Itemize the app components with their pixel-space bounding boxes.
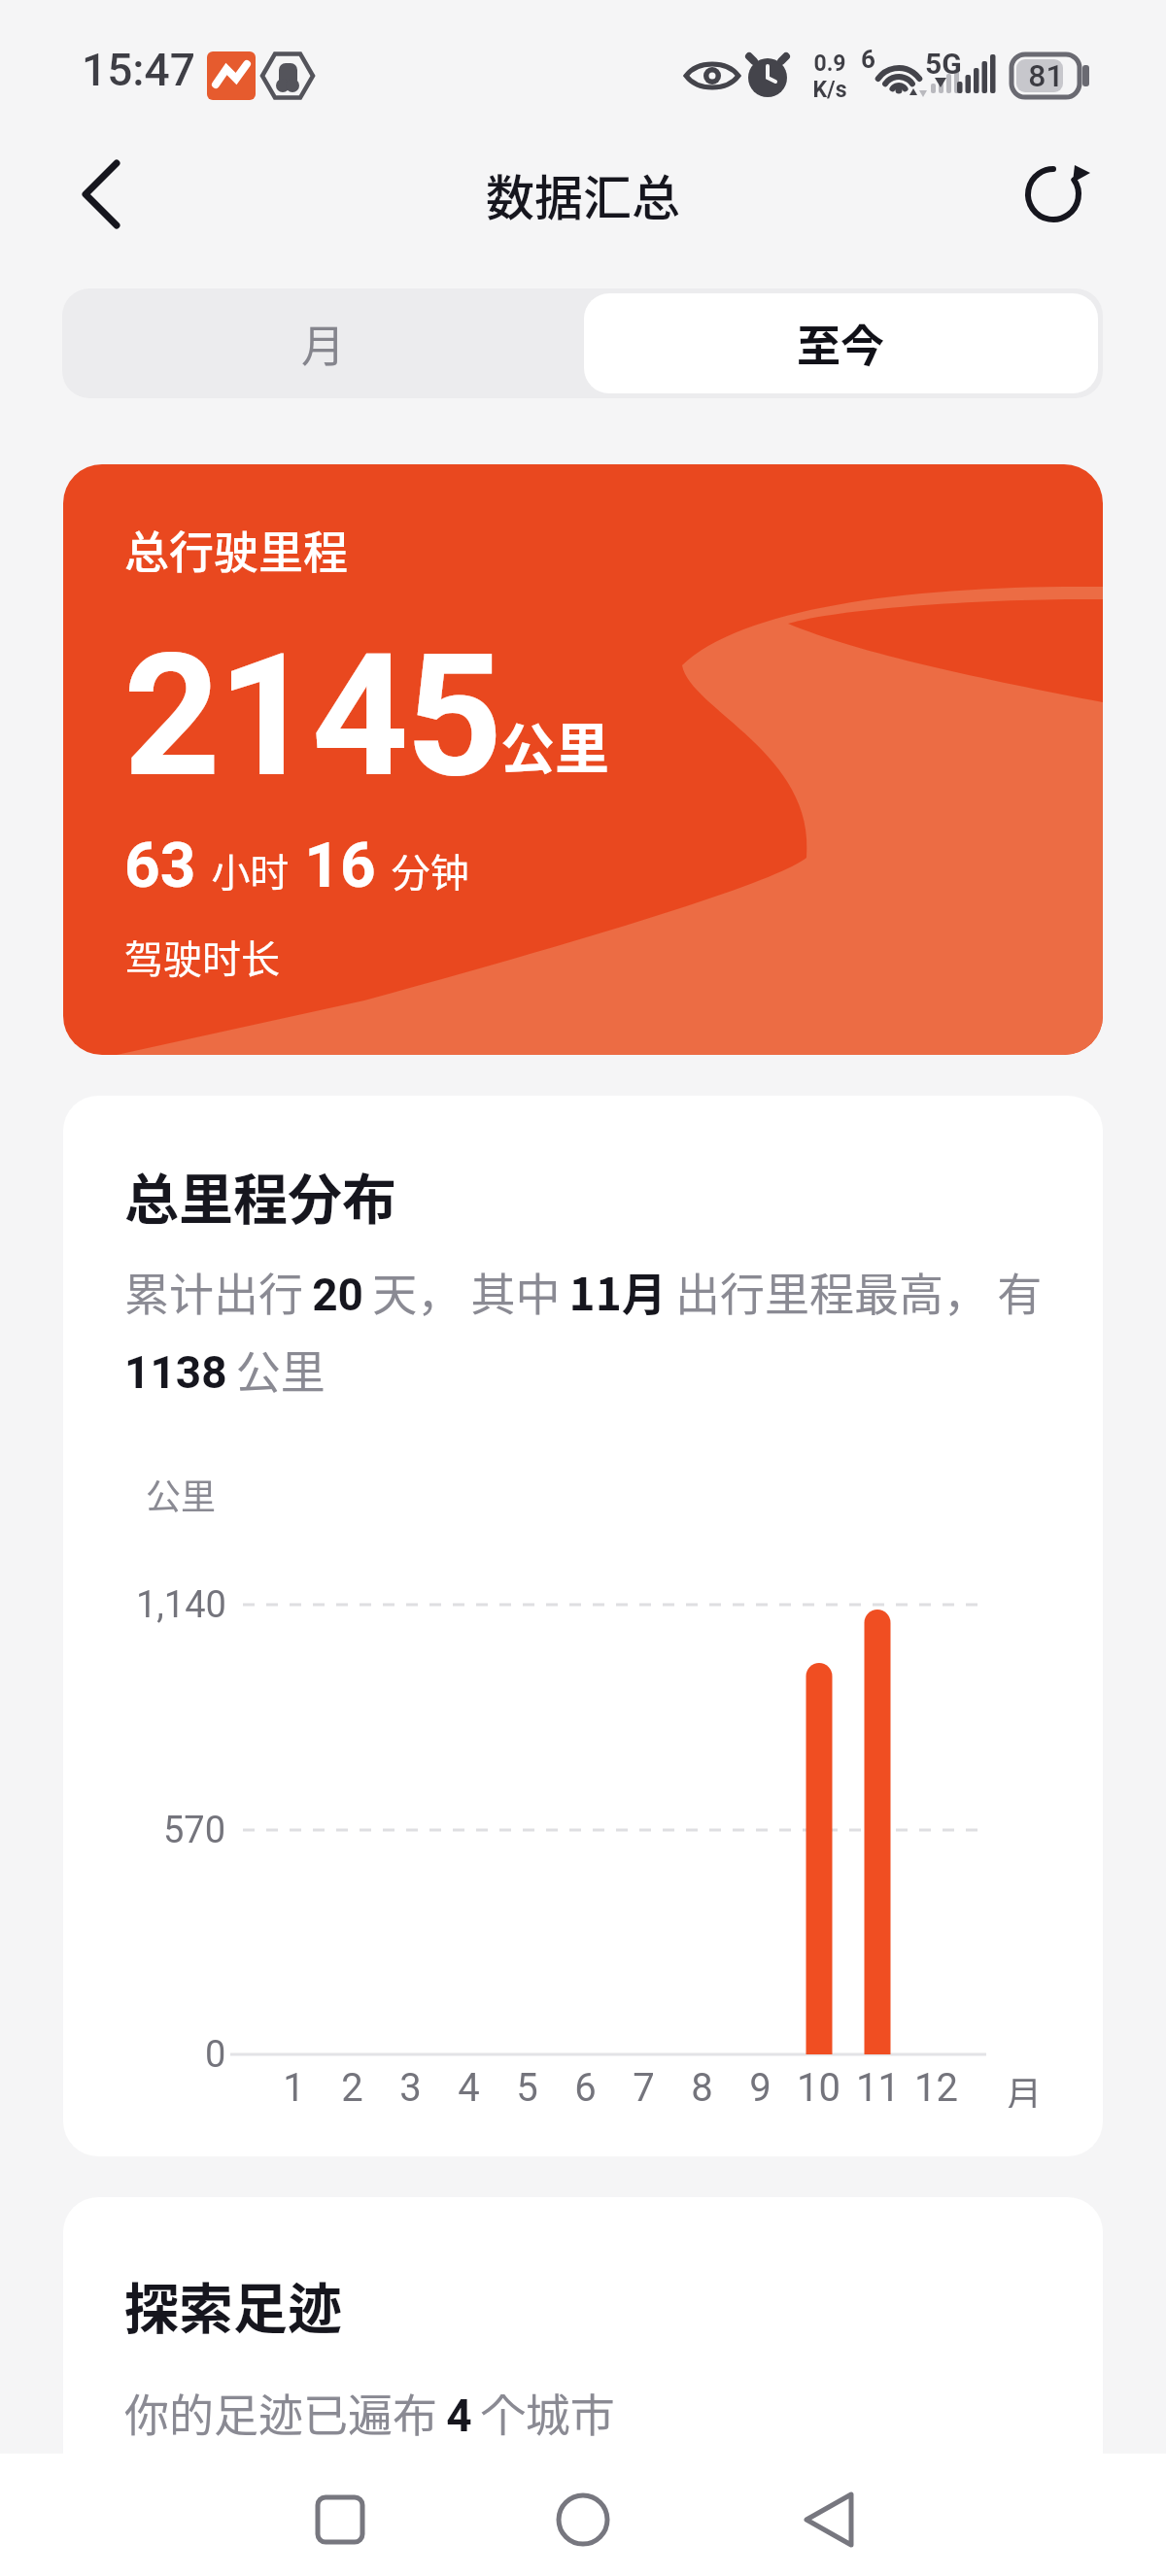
staticText: 15:47 [82, 44, 195, 96]
staticText: 数据汇总 [486, 159, 680, 227]
button[interactable] [789, 2481, 867, 2559]
staticText: 63 小时 16 分钟 [124, 830, 469, 902]
staticText: 1 [283, 2065, 305, 2108]
staticText: 9 [749, 2065, 772, 2108]
staticText: 驾驶时长 [124, 929, 280, 985]
staticText: 0.9 K/s [812, 51, 847, 102]
staticText: 公里 [146, 1469, 217, 1519]
staticText: 月 [301, 312, 346, 375]
staticText: 81 [1028, 57, 1064, 94]
button[interactable] [544, 2481, 622, 2559]
staticText: 12 [914, 2065, 958, 2108]
staticText: 7 [633, 2065, 655, 2108]
staticText: 6 [574, 2065, 597, 2108]
staticText: 公里 [500, 705, 609, 784]
staticText: 探索足迹 [124, 2265, 342, 2344]
staticText: 6 [861, 45, 875, 74]
staticText: 8 [691, 2065, 713, 2108]
staticText: 570 [163, 1809, 226, 1852]
staticText: 1138 公里 [124, 1337, 326, 1402]
staticText: 2 [341, 2065, 363, 2108]
button[interactable] [1011, 152, 1096, 237]
staticText: 累计出行 20 天， 其中 11月 出行里程最高， 有 [124, 1259, 1043, 1324]
staticText: 你的足迹已遍布 4 个城市 [124, 2380, 615, 2445]
button[interactable] [301, 2481, 379, 2559]
staticText: 10 [797, 2065, 840, 2108]
staticText: 5 [516, 2065, 538, 2108]
staticText: 总行驶里程 [124, 517, 348, 582]
staticText: 1,140 [136, 1583, 226, 1627]
staticText: 至今 [797, 312, 885, 375]
staticText: 3 [399, 2065, 422, 2108]
staticText: 月 [1005, 2065, 1043, 2108]
staticText: 0 [205, 2033, 226, 2077]
staticText: 2145 [123, 618, 500, 816]
button[interactable]: 月 [62, 288, 584, 398]
button[interactable]: 至今 [584, 293, 1098, 393]
staticText: 总里程分布 [124, 1156, 396, 1235]
button[interactable] [58, 155, 146, 233]
staticText: 5G [925, 47, 962, 81]
staticText: 11 [856, 2065, 900, 2108]
staticText: 4 [458, 2065, 480, 2108]
